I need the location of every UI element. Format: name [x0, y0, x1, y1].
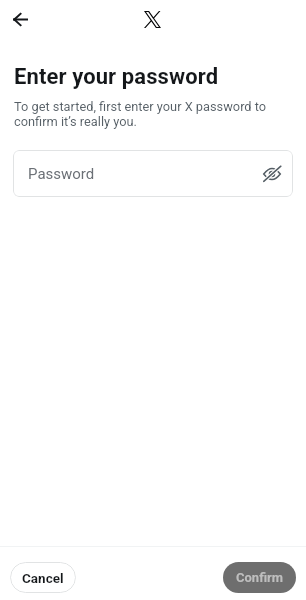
button[interactable]: Cancel [10, 562, 76, 593]
button[interactable]: Password [13, 150, 293, 197]
button[interactable]: Confirm [223, 562, 296, 593]
staticText: Cancel [22, 570, 64, 586]
button[interactable]: Show password [258, 160, 286, 188]
staticText: To get started, first enter your X passw… [14, 99, 292, 129]
staticText: Confirm [236, 570, 284, 585]
staticText: Password [28, 165, 95, 183]
staticText: Enter your password [14, 64, 219, 90]
button[interactable]: Back [7, 6, 33, 32]
